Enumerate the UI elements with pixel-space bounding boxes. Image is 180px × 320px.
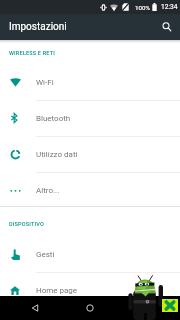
button[interactable]: Indietro [15,296,55,320]
button[interactable]: Assistente [128,270,180,320]
button[interactable]: Utilizzo dati [0,136,180,172]
button[interactable]: Recenti [125,296,165,320]
staticText: 100% [135,4,150,11]
button[interactable]: Home page [0,272,180,308]
staticText: DISPOSITIVO [9,221,45,228]
staticText: 12:34 [161,3,178,11]
button[interactable]: Wi-Fi [0,64,180,100]
button[interactable]: Cerca [154,14,180,40]
staticText: Utilizzo dati [36,150,78,159]
button[interactable]: Scorciatoia [162,299,178,312]
staticText: Wi-Fi [36,78,54,87]
staticText: Home page [36,286,78,295]
staticText: Altro... [36,186,60,195]
button[interactable]: Bluetooth [0,100,180,136]
staticText: Gesti [36,250,55,259]
button[interactable]: Altro... [0,172,180,208]
staticText: Bluetooth [36,114,71,123]
button[interactable]: Gesti [0,236,180,272]
button[interactable]: Home [70,296,110,320]
staticText: Impostazioni [9,21,67,33]
staticText: WIRELESS E RETI [9,50,55,57]
